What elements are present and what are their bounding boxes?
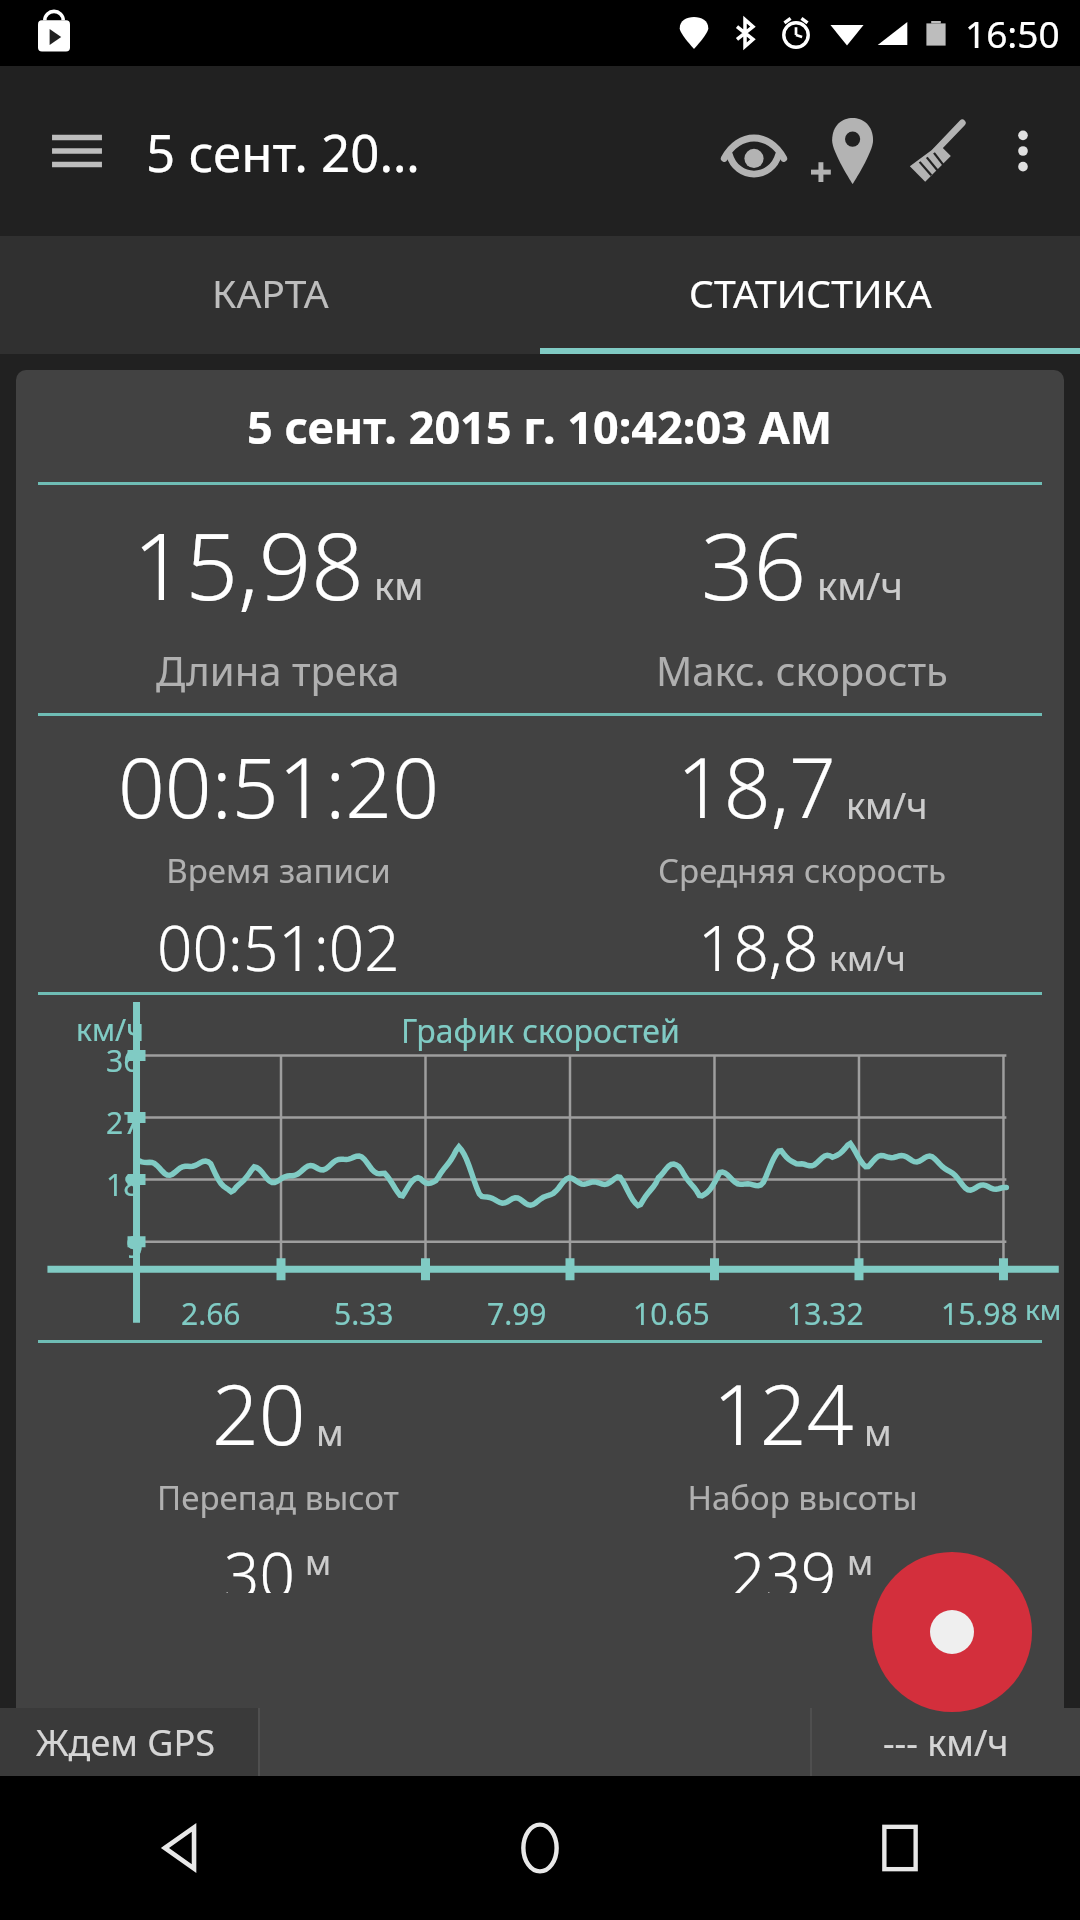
staticText: 124 [713,1357,854,1469]
button[interactable]: Главный экран [360,1776,720,1920]
staticText: 10.65 [633,1293,710,1334]
staticText: График скоростей [401,1009,680,1053]
staticText: КАРТА [212,266,329,319]
button[interactable]: Назад [0,1776,360,1920]
staticText: Время записи [166,848,391,893]
staticText: 16:50 [965,8,1060,58]
button[interactable]: Ещё [984,112,1062,190]
staticText: 18,8 [698,905,819,989]
button[interactable]: Обзор [720,1776,1080,1920]
staticText: 13.32 [787,1293,864,1334]
staticText: 239 [730,1532,837,1593]
staticText: 36 [106,1040,141,1081]
staticText: Макс. скорость [656,643,948,697]
button[interactable]: Добавить точку [800,105,892,197]
staticText: км/ч [829,935,906,981]
button[interactable]: КАРТА [0,236,540,348]
staticText: 5.33 [334,1293,394,1334]
staticText: км [374,559,424,611]
staticText: км [1025,1290,1062,1328]
staticText: --- км/ч [883,1718,1009,1767]
staticText: 00:51:02 [157,905,400,989]
button[interactable]: Ждем GPS [0,1708,258,1776]
staticText: Перепад высот [157,1475,399,1520]
staticText: Ждем GPS [36,1718,216,1767]
staticText: 9 [126,1226,144,1267]
staticText: СТАТИСТИКА [689,266,932,319]
button[interactable]: 5 сент. 2015 г. 10:42:03 AM [16,370,1064,1708]
staticText: 18,7 [677,730,836,842]
staticText: 5 сент. 2015 г. 10:42:03 AM [247,396,833,457]
staticText: 15.98 [941,1293,1018,1334]
staticText: 30 [224,1532,295,1593]
button[interactable]: Запись трека [872,1552,1032,1712]
staticText: км/ч [846,781,928,830]
staticText: км/ч [76,1009,144,1050]
button[interactable]: Очистить [892,105,984,197]
staticText: Набор высоты [687,1475,918,1520]
staticText: 15,98 [133,502,364,627]
staticText: 20 [212,1357,306,1469]
staticText: 2.66 [181,1293,241,1334]
button[interactable]: Показать [708,105,800,197]
staticText: Средняя скорость [658,848,946,893]
staticText: 7.99 [487,1293,547,1334]
staticText: м [847,1539,874,1585]
staticText: 5 сент. 20… [146,117,420,186]
staticText: Длина трека [156,643,400,697]
staticText: км/ч [817,559,903,611]
button[interactable]: СТАТИСТИКА [540,236,1080,348]
staticText: м [316,1408,344,1457]
staticText: м [305,1539,332,1585]
button[interactable]: --- км/ч [812,1708,1080,1776]
staticText: 36 [701,502,807,627]
staticText: 18 [106,1164,141,1205]
button[interactable]: Меню [44,118,110,184]
staticText: 27 [106,1102,141,1143]
staticText: м [864,1408,892,1457]
staticText: 00:51:20 [118,730,439,842]
